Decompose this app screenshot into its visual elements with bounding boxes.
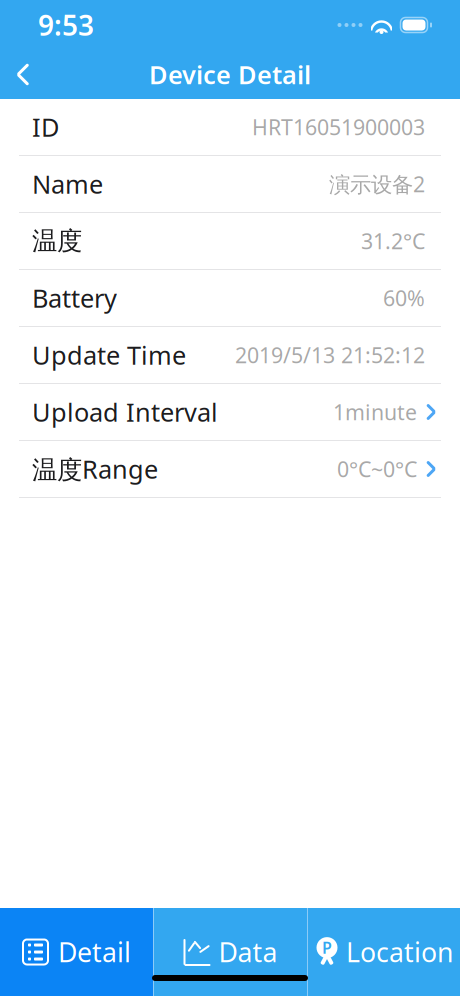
staticText: 60% — [383, 284, 425, 312]
staticText: Data — [218, 934, 277, 970]
button[interactable]: Back — [0, 52, 46, 96]
staticText: Device Detail — [149, 58, 311, 91]
button[interactable]: Upload Interval — [0, 384, 460, 440]
staticText: ID — [32, 110, 59, 144]
staticText: HRT16051900003 — [252, 113, 425, 141]
button[interactable]: P — [308, 908, 460, 996]
staticText: 演示设备2 — [329, 170, 425, 198]
staticText: 1minute — [333, 398, 417, 426]
staticText: Upload Interval — [32, 395, 218, 429]
staticText: 温度 — [32, 225, 82, 256]
staticText: 温度Range — [32, 452, 158, 486]
button[interactable]: Data — [154, 908, 307, 996]
button[interactable]: Detail — [0, 908, 153, 996]
staticText: 2019/5/13 21:52:12 — [235, 341, 425, 369]
staticText: 0°C~0°C — [337, 455, 417, 483]
staticText: Name — [32, 167, 103, 201]
staticText: Battery — [32, 281, 117, 315]
staticText: 31.2°C — [361, 227, 425, 255]
button[interactable]: 温度Range — [0, 441, 460, 497]
staticText: Update Time — [32, 338, 186, 372]
staticText: Location — [346, 934, 453, 970]
staticText: P — [322, 937, 332, 958]
staticText: Detail — [58, 934, 131, 970]
staticText: 9:53 — [38, 6, 94, 44]
